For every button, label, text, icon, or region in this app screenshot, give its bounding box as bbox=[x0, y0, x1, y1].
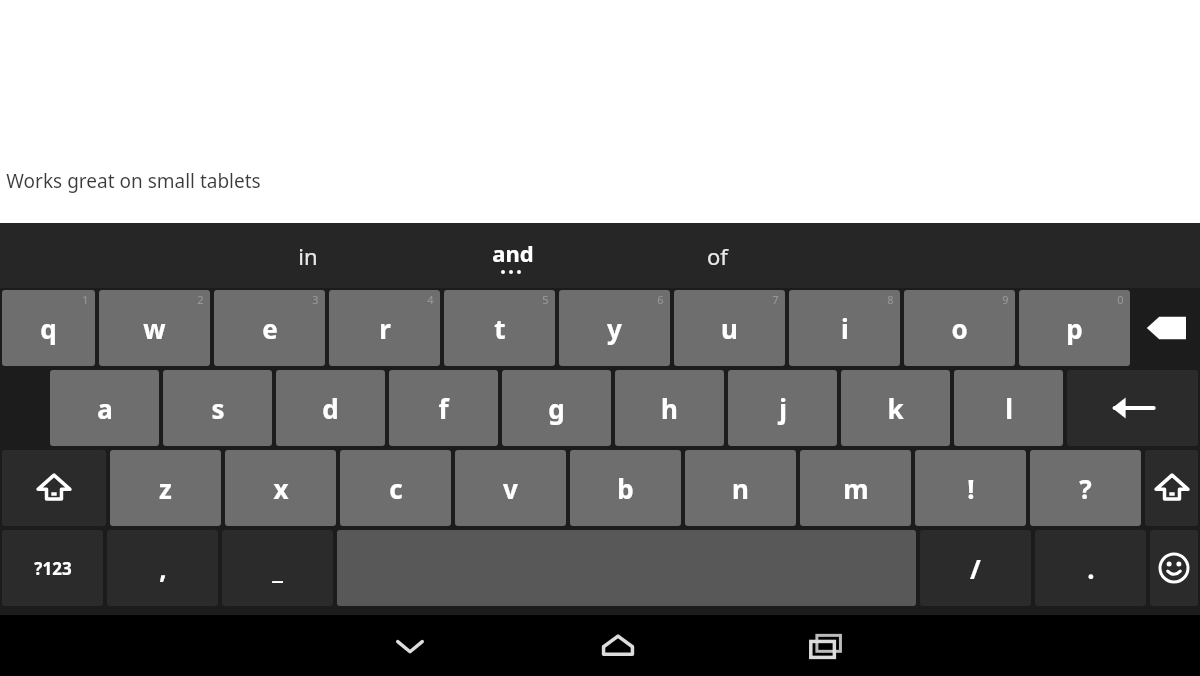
button[interactable]: ? bbox=[1030, 450, 1141, 526]
button[interactable]: b bbox=[570, 450, 681, 526]
button[interactable]: u bbox=[674, 290, 785, 366]
button[interactable]: w bbox=[99, 290, 210, 366]
button[interactable]: _ bbox=[222, 530, 333, 606]
button[interactable]: ! bbox=[915, 450, 1026, 526]
staticText: 0 bbox=[1117, 292, 1124, 307]
staticText: . bbox=[1087, 551, 1095, 586]
staticText: c bbox=[389, 471, 403, 506]
staticText: v bbox=[503, 471, 518, 506]
staticText: 3 bbox=[312, 292, 319, 307]
staticText: e bbox=[262, 311, 278, 346]
button[interactable]: l bbox=[954, 370, 1063, 446]
staticText: o bbox=[951, 311, 968, 346]
staticText: h bbox=[661, 391, 678, 426]
button[interactable]: r bbox=[329, 290, 440, 366]
button[interactable]: x bbox=[225, 450, 336, 526]
staticText: i bbox=[841, 311, 849, 346]
staticText: j bbox=[779, 391, 787, 426]
staticText: t bbox=[494, 311, 506, 346]
staticText: x bbox=[273, 471, 289, 506]
staticText: q bbox=[40, 311, 57, 346]
staticText: and bbox=[492, 238, 534, 268]
staticText: d bbox=[322, 391, 339, 426]
staticText: a bbox=[97, 391, 113, 426]
button[interactable]: Hide keyboard bbox=[340, 615, 480, 676]
button[interactable]: and bbox=[410, 223, 615, 288]
button[interactable]: j bbox=[728, 370, 837, 446]
staticText: r bbox=[379, 311, 391, 346]
button[interactable]: i bbox=[789, 290, 900, 366]
staticText: u bbox=[721, 311, 738, 346]
staticText: Works great on small tablets bbox=[6, 168, 261, 194]
staticText: 5 bbox=[542, 292, 549, 307]
button[interactable]: y bbox=[559, 290, 670, 366]
staticText: _ bbox=[272, 551, 283, 586]
button[interactable]: in bbox=[205, 223, 410, 288]
staticText: 8 bbox=[887, 292, 894, 307]
staticText: 4 bbox=[427, 292, 434, 307]
button[interactable]: , bbox=[107, 530, 218, 606]
staticText: n bbox=[732, 471, 749, 506]
button[interactable]: t bbox=[444, 290, 555, 366]
button[interactable]: a bbox=[50, 370, 159, 446]
staticText: f bbox=[438, 391, 449, 426]
staticText: 9 bbox=[1002, 292, 1009, 307]
staticText: w bbox=[143, 311, 166, 346]
staticText: of bbox=[707, 241, 728, 271]
button[interactable]: Backspace bbox=[1134, 290, 1198, 366]
staticText: / bbox=[970, 551, 981, 586]
staticText: p bbox=[1066, 311, 1083, 346]
staticText: s bbox=[211, 391, 225, 426]
button[interactable]: Emoji bbox=[1150, 530, 1198, 606]
staticText: ? bbox=[1079, 471, 1092, 506]
button[interactable]: s bbox=[163, 370, 272, 446]
button[interactable]: p bbox=[1019, 290, 1130, 366]
button[interactable]: g bbox=[502, 370, 611, 446]
button[interactable]: h bbox=[615, 370, 724, 446]
button[interactable]: ?123 bbox=[2, 530, 103, 606]
staticText: ! bbox=[967, 471, 975, 506]
button[interactable]: z bbox=[110, 450, 221, 526]
button[interactable]: Shift bbox=[2, 450, 106, 526]
button[interactable]: Shift bbox=[1145, 450, 1198, 526]
staticText: k bbox=[887, 391, 904, 426]
staticText: m bbox=[843, 471, 869, 506]
staticText: , bbox=[159, 551, 167, 586]
button[interactable]: Home bbox=[548, 615, 688, 676]
staticText: 2 bbox=[197, 292, 204, 307]
button[interactable]: n bbox=[685, 450, 796, 526]
button[interactable]: k bbox=[841, 370, 950, 446]
button[interactable]: d bbox=[276, 370, 385, 446]
staticText: 6 bbox=[657, 292, 664, 307]
button[interactable]: Enter bbox=[1067, 370, 1198, 446]
button[interactable]: o bbox=[904, 290, 1015, 366]
staticText: in bbox=[298, 241, 318, 271]
staticText: y bbox=[607, 311, 622, 346]
staticText: l bbox=[1005, 391, 1013, 426]
button[interactable]: . bbox=[1035, 530, 1146, 606]
button[interactable]: q bbox=[2, 290, 95, 366]
button[interactable]: c bbox=[340, 450, 451, 526]
button[interactable]: v bbox=[455, 450, 566, 526]
button[interactable]: of bbox=[615, 223, 820, 288]
staticText: 7 bbox=[772, 292, 779, 307]
button[interactable]: f bbox=[389, 370, 498, 446]
button[interactable]: e bbox=[214, 290, 325, 366]
staticText: b bbox=[617, 471, 634, 506]
staticText: z bbox=[159, 471, 172, 506]
button[interactable]: Recent apps bbox=[756, 615, 896, 676]
staticText: g bbox=[548, 391, 565, 426]
staticText: 1 bbox=[82, 292, 89, 307]
button[interactable]: m bbox=[800, 450, 911, 526]
button[interactable]: / bbox=[920, 530, 1031, 606]
staticText: ?123 bbox=[34, 557, 72, 580]
